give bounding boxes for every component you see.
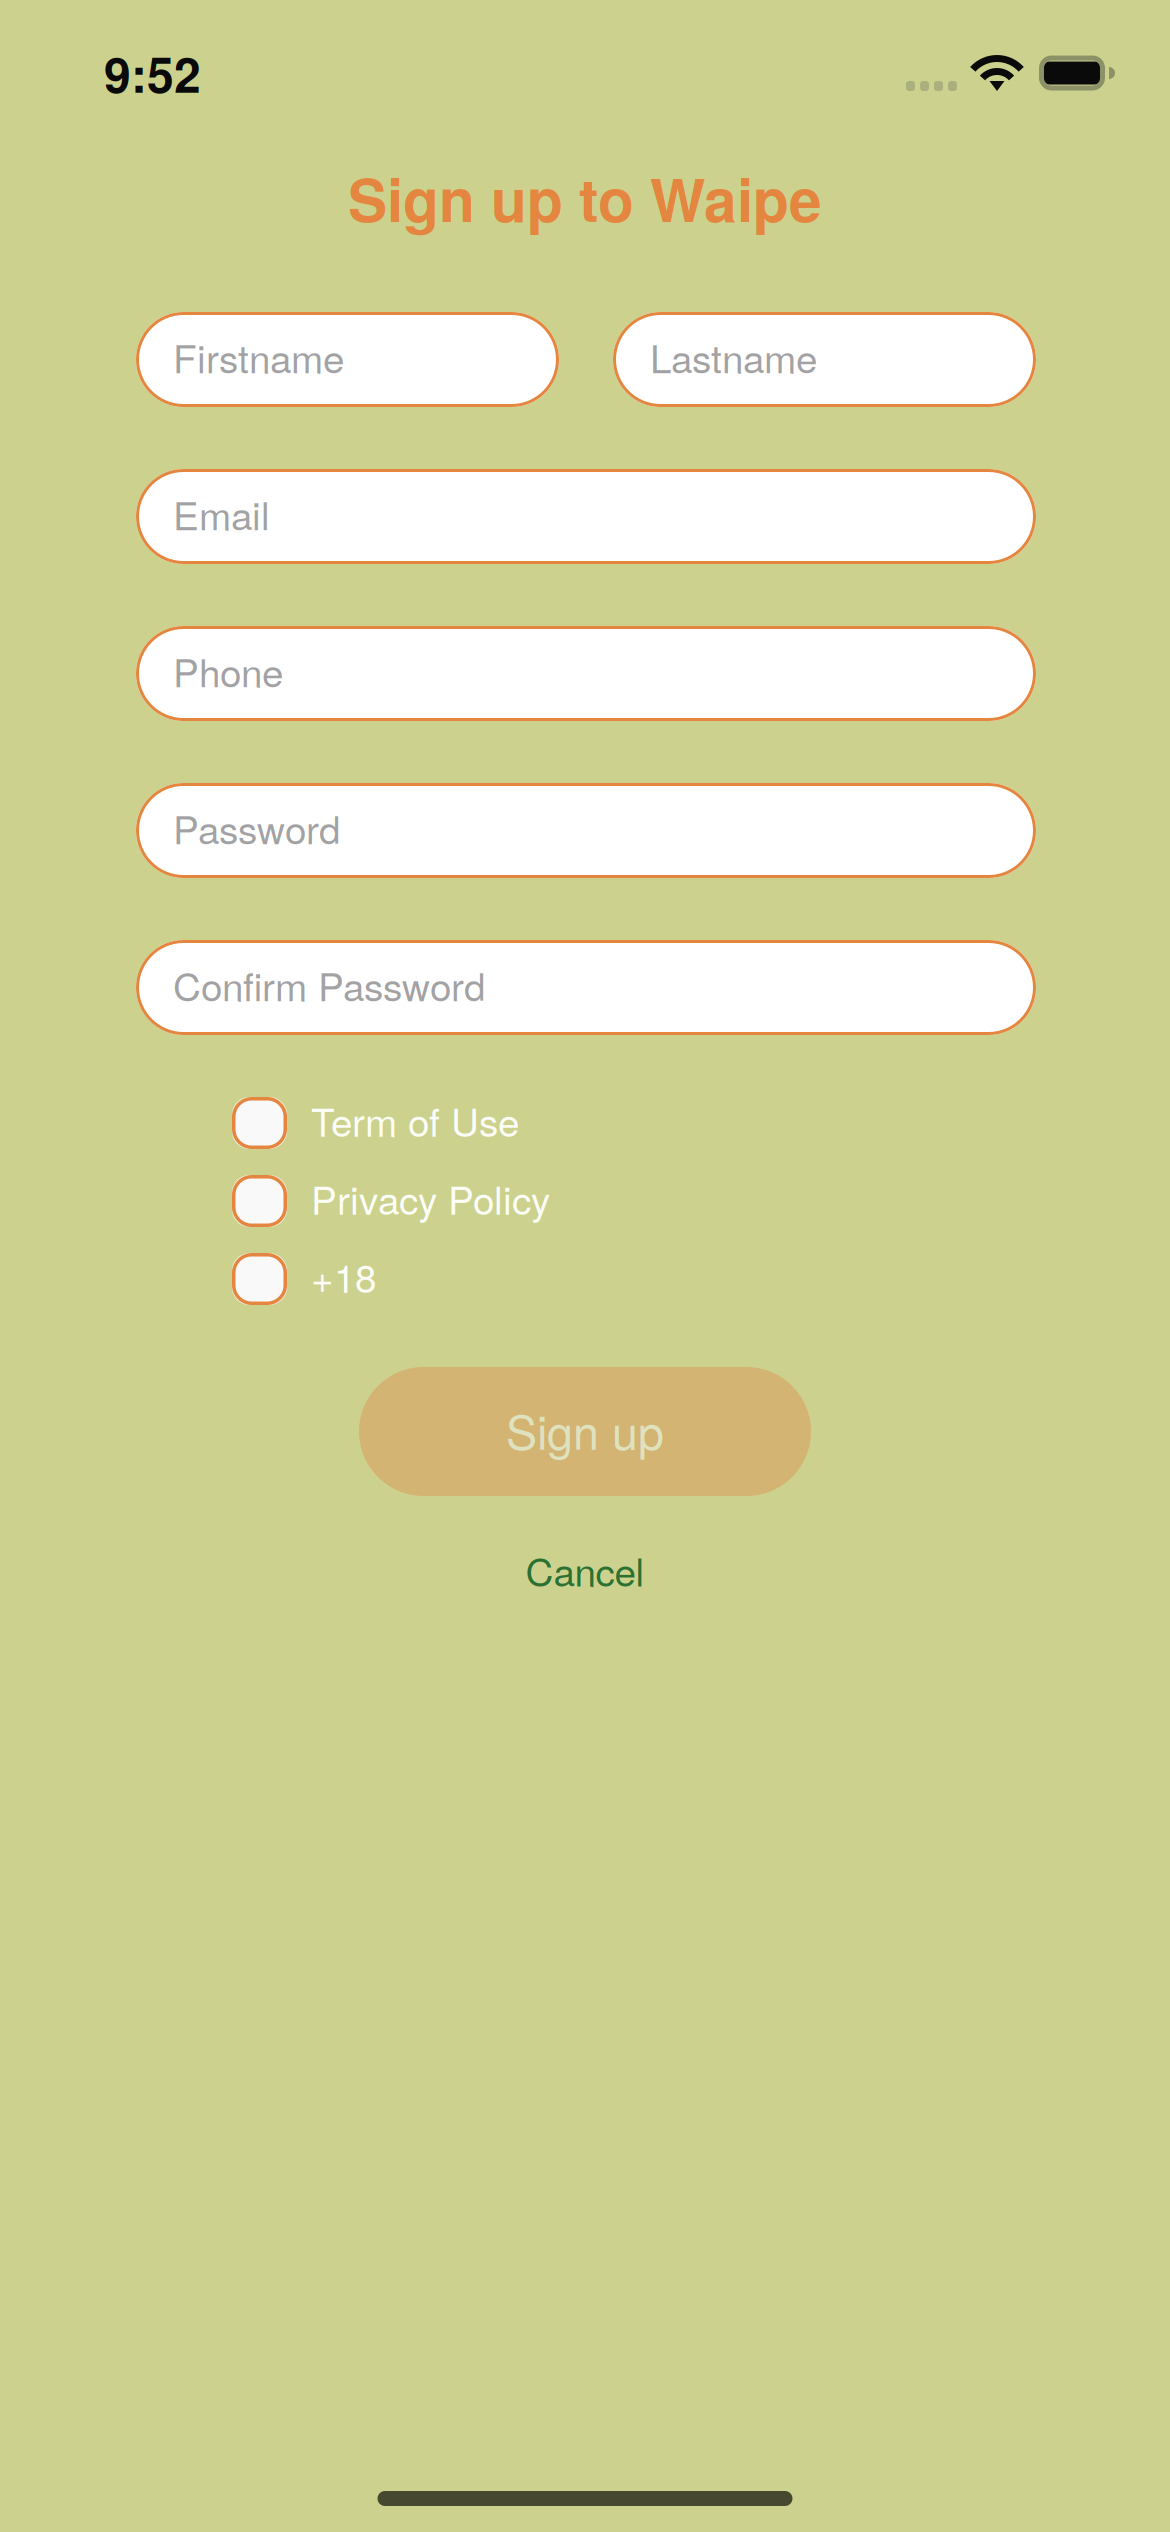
button[interactable]: Email <box>136 469 1036 564</box>
staticText: Privacy Policy <box>311 1170 550 1226</box>
staticText: Lastname <box>650 329 817 384</box>
staticText: Phone <box>173 643 283 698</box>
staticText: +18 <box>311 1248 376 1304</box>
button[interactable]: Lastname <box>613 312 1036 407</box>
button[interactable]: Confirm Password <box>136 940 1036 1035</box>
staticText: Term of Use <box>311 1092 519 1148</box>
staticText: Sign up <box>506 1396 664 1463</box>
button[interactable]: Privacy Policy <box>232 1162 1036 1240</box>
button[interactable]: Password <box>136 783 1036 878</box>
staticText: Sign up to Waipe <box>348 156 822 240</box>
button[interactable]: Phone <box>136 626 1036 721</box>
button[interactable]: Cancel <box>485 1520 684 1619</box>
button[interactable]: Term of Use <box>232 1084 1036 1162</box>
staticText: Confirm Password <box>173 957 485 1012</box>
staticText: Firstname <box>173 329 344 384</box>
staticText: Cancel <box>525 1542 644 1597</box>
staticText: 9:52 <box>104 39 201 107</box>
staticText: Password <box>173 800 340 855</box>
staticText: Email <box>173 486 270 541</box>
button[interactable]: Firstname <box>136 312 559 407</box>
button[interactable]: Sign up <box>359 1367 811 1496</box>
button[interactable]: +18 <box>232 1240 1036 1318</box>
